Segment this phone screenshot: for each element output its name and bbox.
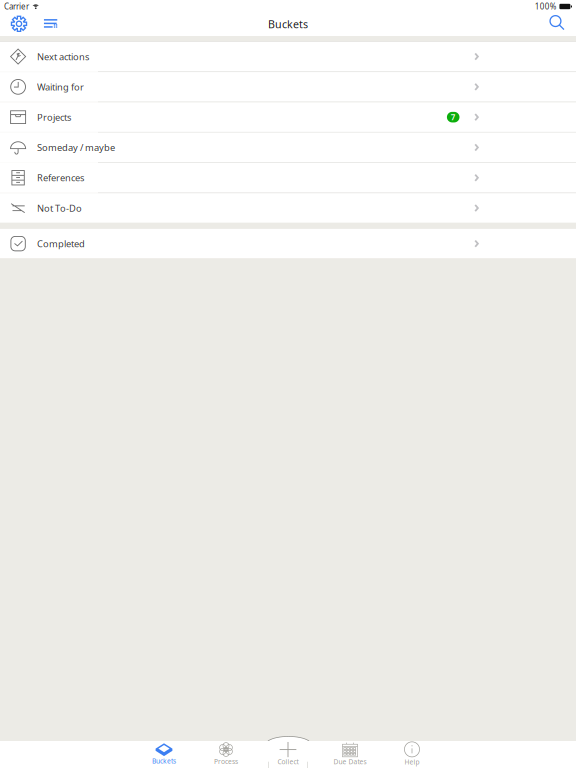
button[interactable]: Search <box>544 12 570 34</box>
staticText: Buckets <box>268 17 308 31</box>
staticText: 100% <box>535 1 557 12</box>
button[interactable]: Projects <box>0 102 576 132</box>
staticText: Process <box>214 757 238 766</box>
staticText: Due Dates <box>333 757 366 766</box>
button[interactable]: References <box>0 163 576 192</box>
button[interactable]: Completed <box>0 229 576 258</box>
button[interactable]: Settings <box>6 13 32 35</box>
button[interactable]: Buckets <box>133 741 195 768</box>
staticText: Completed <box>37 237 85 250</box>
staticText: Buckets <box>152 756 176 765</box>
staticText: Carrier <box>4 1 29 12</box>
button[interactable]: Waiting for <box>0 72 576 102</box>
button[interactable]: Collect <box>257 741 319 768</box>
staticText: Projects <box>37 111 71 123</box>
button[interactable]: Someday / maybe <box>0 133 576 162</box>
staticText: Collect <box>277 757 298 766</box>
button[interactable]: Due Dates <box>319 741 381 768</box>
button[interactable]: Not To-Do <box>0 193 576 223</box>
button[interactable]: Next actions <box>0 42 576 71</box>
staticText: References <box>37 172 84 184</box>
staticText: 7 <box>451 112 456 122</box>
staticText: Waiting for <box>37 81 84 93</box>
staticText: Help <box>404 757 419 766</box>
staticText: Not To-Do <box>37 202 82 214</box>
button[interactable]: Process <box>195 741 257 768</box>
button[interactable]: Help <box>381 741 443 768</box>
staticText: Next actions <box>37 50 89 63</box>
button[interactable]: Group and sort <box>39 12 63 34</box>
staticText: Someday / maybe <box>37 141 115 154</box>
